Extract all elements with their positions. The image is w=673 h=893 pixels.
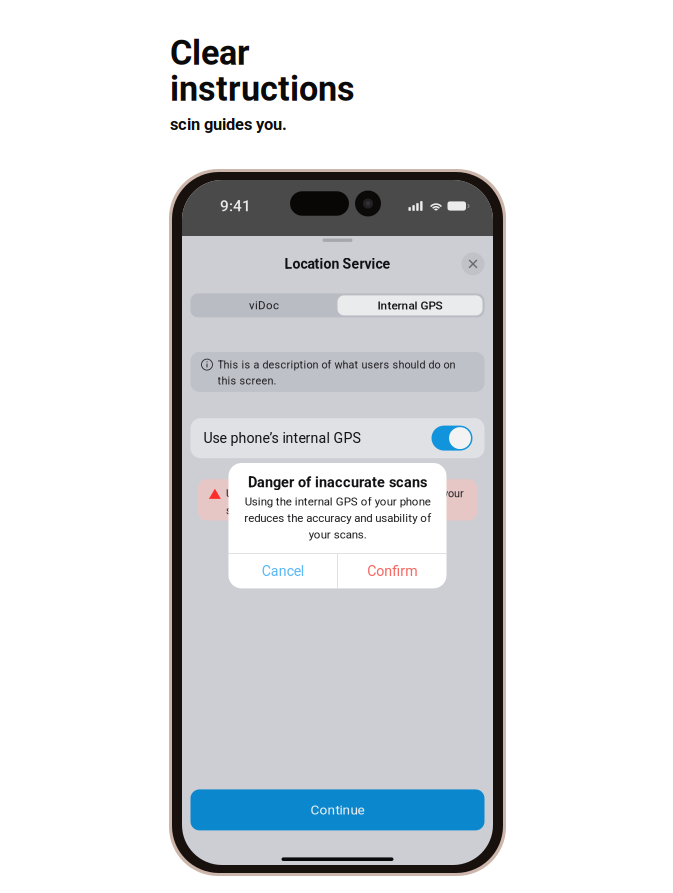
staticText: Use phone’s internal GPS — [203, 430, 360, 446]
staticText: viDoc — [249, 299, 279, 312]
staticText: scin guides you. — [170, 115, 287, 134]
staticText: Internal GPS — [377, 298, 442, 312]
button[interactable]: Continue — [190, 789, 484, 830]
staticText: Danger of inaccurate scans — [248, 474, 427, 491]
staticText: Location Service — [284, 256, 390, 272]
staticText: Confirm — [367, 563, 417, 579]
button[interactable]: Cancel — [228, 554, 337, 588]
staticText: Continue — [310, 802, 364, 818]
button[interactable]: Use phone’s internal GPS — [190, 418, 484, 458]
staticText: Cancel — [262, 563, 304, 579]
staticText: This is a description of what users shou… — [217, 359, 455, 387]
staticText: instructions — [170, 69, 355, 109]
button[interactable]: viDoc — [190, 293, 337, 317]
staticText: 9:41 — [220, 197, 251, 215]
button[interactable]: Internal GPS — [337, 293, 484, 317]
button[interactable]: Confirm — [338, 554, 447, 588]
staticText: Clear — [170, 33, 250, 73]
staticText: Using the internal GPS of your phone red… — [244, 495, 431, 541]
button[interactable]: Close — [461, 252, 484, 275]
staticText: Using the internal GPS of this phone mak… — [226, 487, 464, 517]
